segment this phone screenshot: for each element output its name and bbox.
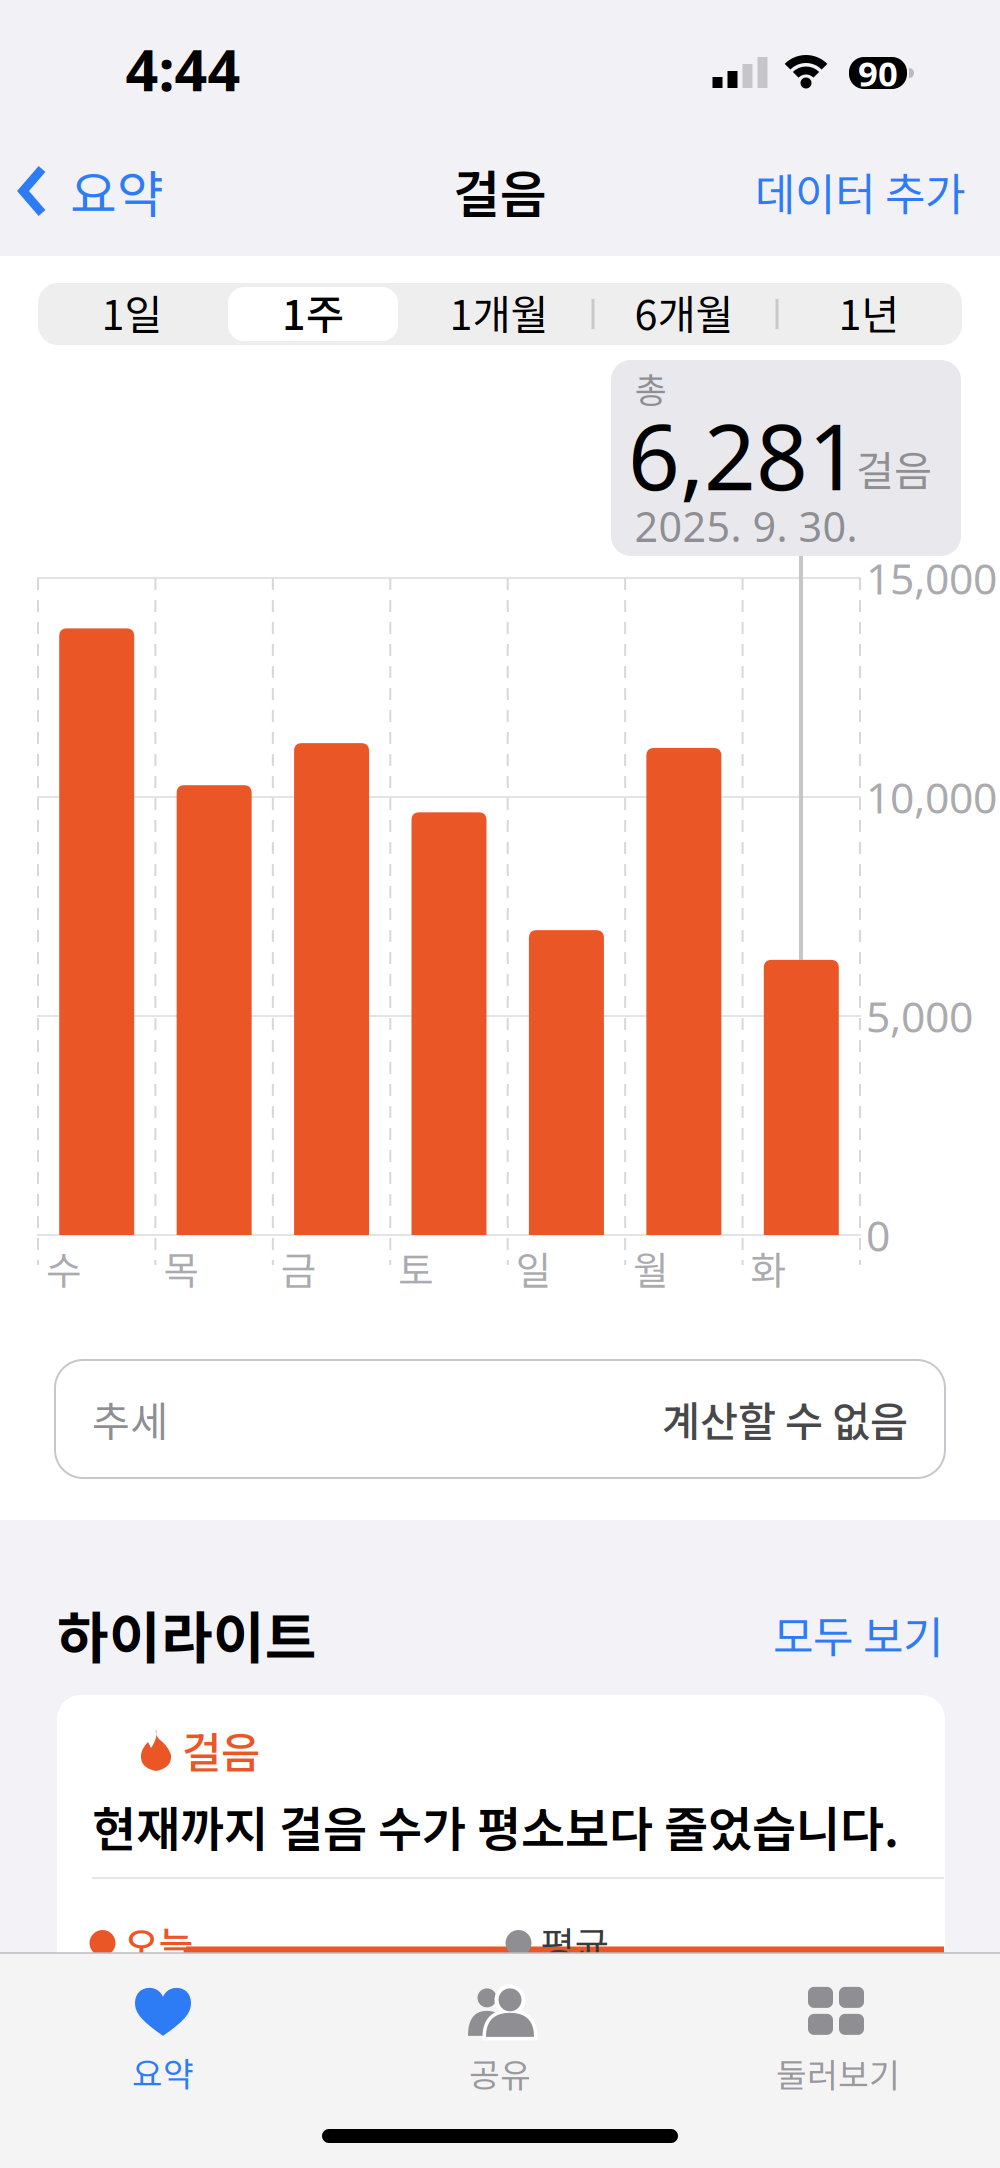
button[interactable]: 모두 보기 xyxy=(773,1602,943,1666)
staticText: 1일 xyxy=(101,282,162,342)
staticText: 90 xyxy=(858,50,898,96)
staticText: 둘러보기 xyxy=(776,2049,900,2097)
staticText: 걸음 xyxy=(453,154,547,228)
staticText: 금 xyxy=(281,1240,317,1296)
staticText: 모두 보기 xyxy=(773,1602,943,1666)
staticText: 공유 xyxy=(469,2049,531,2097)
staticText: 오늘 xyxy=(124,1916,192,1970)
staticText: 걸음 xyxy=(856,438,932,498)
staticText: 5,000 xyxy=(866,988,973,1044)
staticText: 현재까지 걸음 수가 평소보다 줄었습니다. xyxy=(92,1791,899,1861)
staticText: 목 xyxy=(163,1240,199,1296)
staticText: 걸음 xyxy=(182,1719,260,1781)
staticText: 1년 xyxy=(838,282,899,342)
staticText: 요약 xyxy=(132,2048,194,2096)
staticText: 0 xyxy=(866,1207,890,1263)
staticText: 화 xyxy=(751,1240,787,1296)
staticText: 월 xyxy=(633,1240,669,1296)
button[interactable]: 6개월 xyxy=(599,284,769,340)
staticText: 데이터 추가 xyxy=(755,159,965,223)
button[interactable]: 데이터 추가 xyxy=(755,159,965,223)
button[interactable]: 1일 xyxy=(57,284,207,340)
staticText: 계산할 수 없음 xyxy=(662,1389,908,1449)
staticText: 10,000 xyxy=(866,769,997,825)
staticText: 요약 xyxy=(70,154,164,228)
button[interactable]: 둘러보기 xyxy=(718,1978,958,2106)
staticText: 6개월 xyxy=(634,282,733,342)
button[interactable]: 1주 xyxy=(229,284,397,340)
staticText: 2025. 9. 30. xyxy=(634,499,857,553)
button[interactable]: 1개월 xyxy=(414,284,584,340)
staticText: 4:44 xyxy=(125,31,240,107)
staticText: 총 xyxy=(635,363,667,413)
staticText: 6,281 xyxy=(628,395,860,515)
button[interactable]: 1년 xyxy=(789,284,949,340)
staticText: 수 xyxy=(46,1240,82,1296)
staticText: 일 xyxy=(516,1240,552,1296)
staticText: 추세 xyxy=(92,1389,168,1449)
button[interactable]: 뒤로 xyxy=(20,154,164,228)
button[interactable]: 요약 xyxy=(43,1978,283,2106)
staticText: 1개월 xyxy=(449,282,548,342)
staticText: 토 xyxy=(398,1240,434,1296)
button[interactable]: 공유 xyxy=(380,1978,620,2106)
staticText: 15,000 xyxy=(866,550,997,606)
button[interactable]: 걸음 xyxy=(57,1695,945,1985)
staticText: 1주 xyxy=(282,282,344,342)
staticText: 하이라이트 xyxy=(57,1593,317,1675)
staticText: 평균 xyxy=(540,1916,608,1970)
